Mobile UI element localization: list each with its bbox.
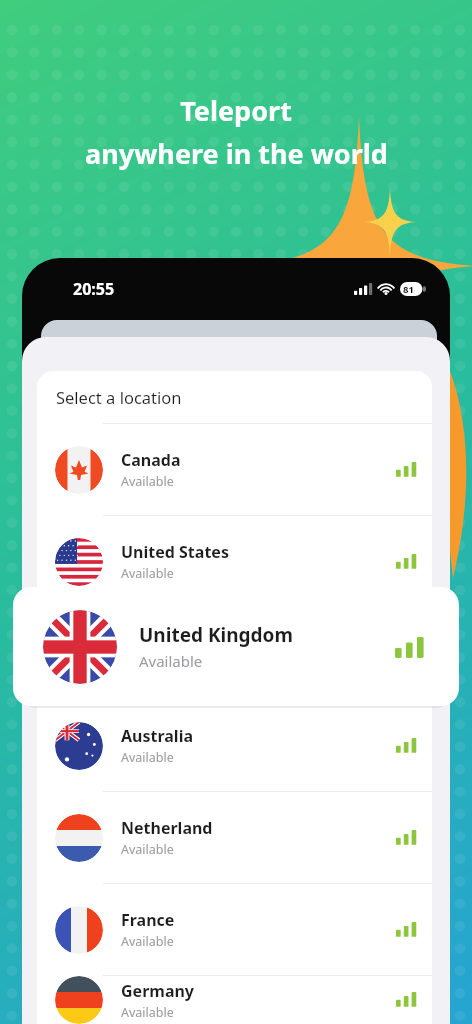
other: Signal strength bbox=[394, 828, 414, 848]
other: Signal strength bbox=[394, 552, 414, 572]
staticText: United Kingdom bbox=[121, 633, 251, 655]
staticText: Available bbox=[121, 565, 174, 582]
staticText: 20:55 bbox=[73, 278, 115, 300]
button[interactable]: United Kingdom bbox=[13, 587, 459, 706]
button[interactable]: United States bbox=[37, 516, 432, 607]
staticText: Australia bbox=[121, 725, 194, 747]
other: Signal strength bbox=[394, 736, 414, 756]
staticText: Netherland bbox=[121, 817, 213, 839]
staticText: Available bbox=[121, 473, 174, 490]
other: Signal strength bbox=[394, 460, 414, 480]
button[interactable]: Netherland bbox=[37, 792, 432, 883]
other: Signal strength bbox=[393, 633, 421, 661]
staticText: Available bbox=[121, 841, 174, 858]
other: Signal strength bbox=[394, 644, 414, 664]
staticText: Available bbox=[121, 657, 174, 674]
button[interactable]: France bbox=[37, 884, 432, 975]
other: Signal strength bbox=[394, 920, 414, 940]
other: Signal strength bbox=[394, 990, 414, 1010]
button[interactable]: Germany bbox=[37, 976, 432, 1024]
staticText: United States bbox=[121, 541, 229, 563]
staticText: Available bbox=[121, 1004, 174, 1021]
staticText: Available bbox=[139, 651, 203, 671]
staticText: Select a location bbox=[56, 386, 182, 408]
button[interactable]: United Kingdom bbox=[37, 608, 432, 699]
staticText: Available bbox=[121, 749, 174, 766]
staticText: Canada bbox=[121, 449, 181, 471]
staticText: France bbox=[121, 909, 175, 931]
staticText: United Kingdom bbox=[139, 622, 293, 648]
button[interactable]: Australia bbox=[37, 700, 432, 791]
staticText: Germany bbox=[121, 980, 195, 1002]
staticText: anywhere in the world bbox=[85, 135, 388, 172]
button[interactable]: Canada bbox=[37, 424, 432, 515]
staticText: 81 bbox=[403, 283, 414, 296]
staticText: Available bbox=[121, 933, 174, 950]
staticText: Teleport bbox=[180, 92, 292, 129]
